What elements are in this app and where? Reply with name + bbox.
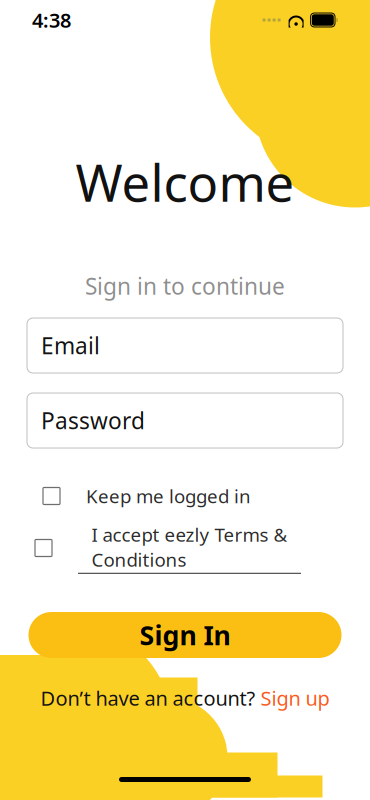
- staticText: Email: [41, 330, 100, 360]
- button[interactable]: Sign In: [28, 612, 341, 658]
- staticText: Sign up: [260, 685, 329, 711]
- staticText: I accept eezly Terms & Conditions: [91, 522, 287, 572]
- button[interactable]: Keep me logged in: [0, 479, 370, 513]
- button[interactable]: Don’t have an account?: [0, 686, 370, 710]
- staticText: Keep me logged in: [86, 484, 251, 508]
- staticText: Welcome: [75, 148, 294, 216]
- staticText: Don’t have an account?: [40, 685, 255, 711]
- staticText: Sign In: [139, 617, 230, 653]
- staticText: Sign in to continue: [85, 271, 285, 301]
- staticText: Password: [41, 405, 145, 435]
- button[interactable]: I accept eezly Terms & Conditions: [0, 531, 370, 565]
- staticText: 4:38: [32, 7, 71, 33]
